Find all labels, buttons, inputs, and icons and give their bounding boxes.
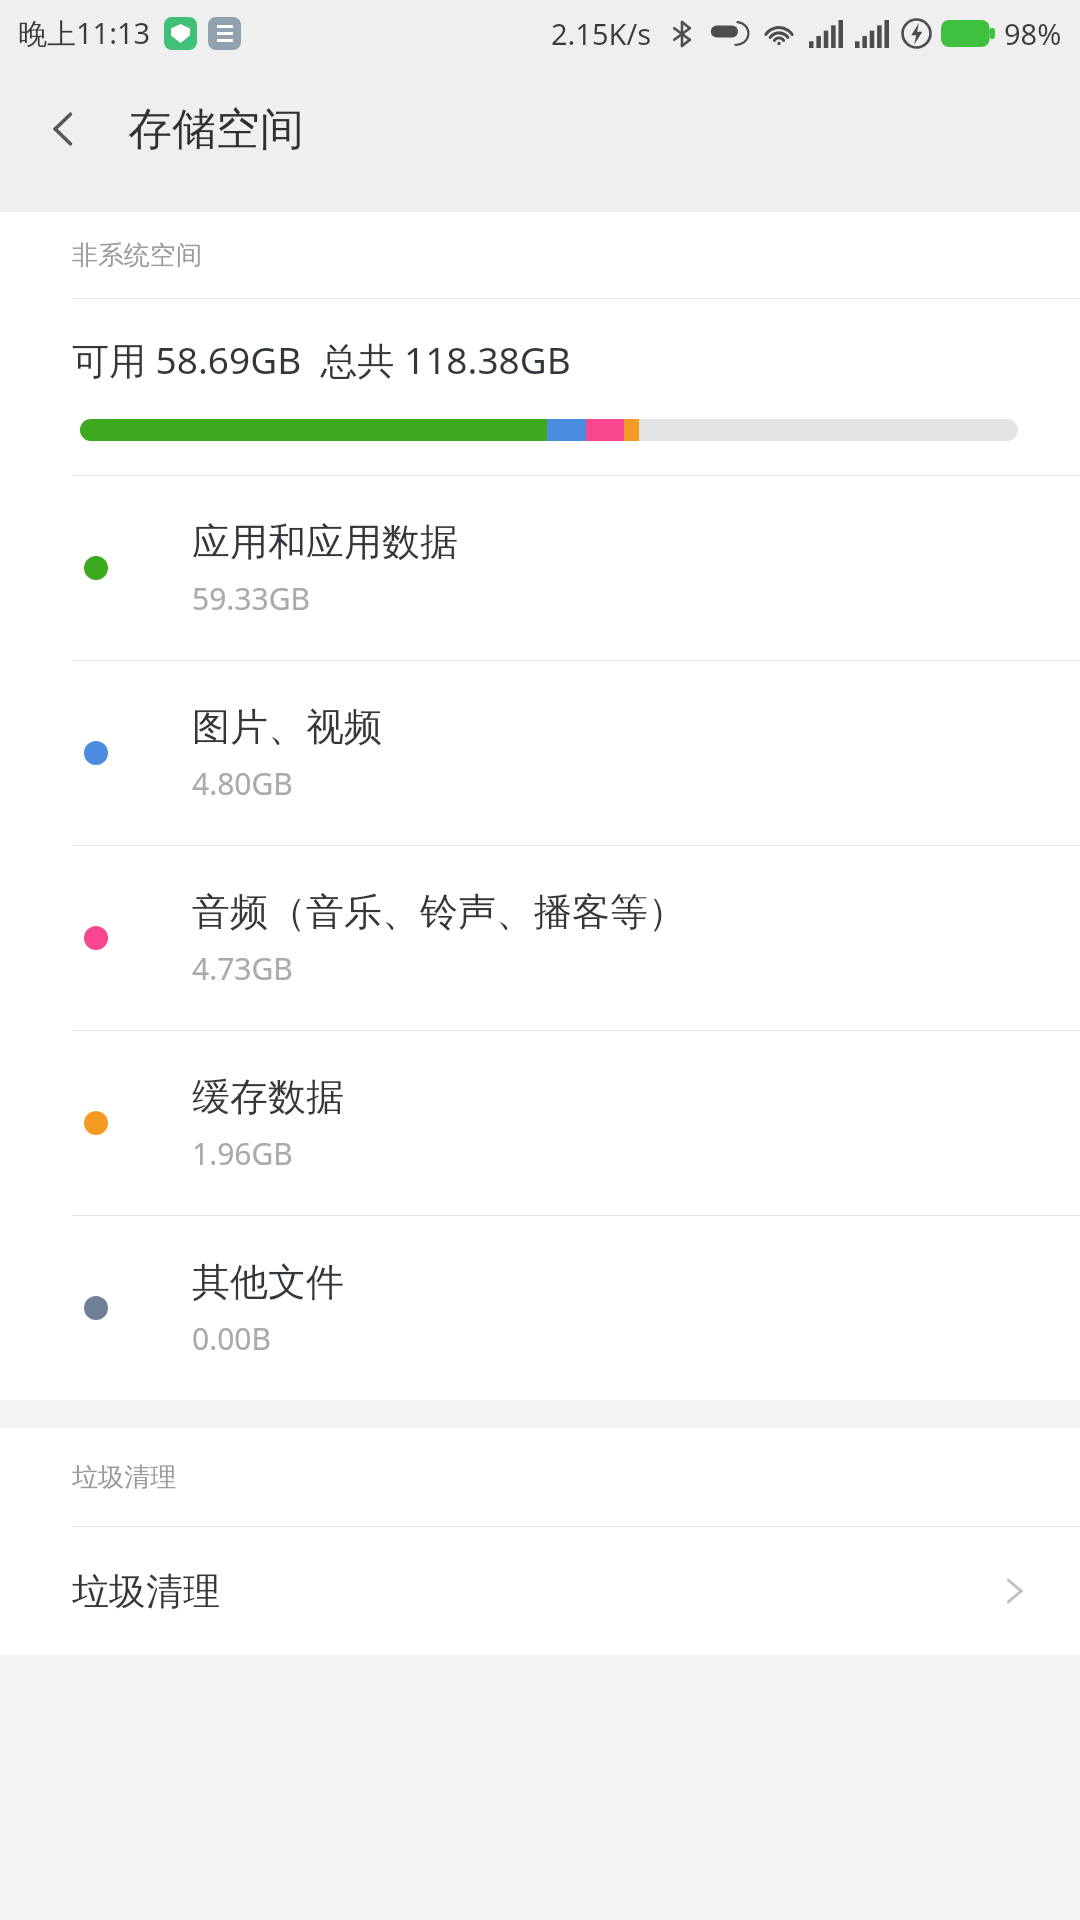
staticText: 非系统空间 (72, 239, 202, 272)
button[interactable]: 图片、视频 (0, 661, 1080, 845)
button[interactable]: 音频（音乐、铃声、播客等） (0, 846, 1080, 1030)
staticText: 缓存数据 (192, 1073, 344, 1121)
button[interactable]: 其他文件 (0, 1216, 1080, 1400)
staticText: 98% (1004, 14, 1062, 53)
button[interactable]: 应用和应用数据 (0, 476, 1080, 660)
staticText: 应用和应用数据 (192, 518, 458, 566)
staticText: 2.15K/s (551, 14, 652, 53)
button[interactable]: 缓存数据 (0, 1031, 1080, 1215)
button[interactable]: 返回 (26, 91, 102, 167)
staticText: 存储空间 (128, 102, 304, 157)
staticText: 晚上11:13 (18, 13, 151, 53)
staticText: 其他文件 (192, 1258, 344, 1306)
other: 垃圾清理 (996, 1573, 1032, 1609)
staticText: 可用 58.69GB 总共 118.38GB (72, 334, 571, 385)
staticText: 0.00B (192, 1318, 272, 1359)
staticText: 1.96GB (192, 1133, 293, 1174)
staticText: 4.80GB (192, 763, 293, 804)
staticText: 音频（音乐、铃声、播客等） (192, 888, 686, 936)
staticText: 图片、视频 (192, 703, 382, 751)
staticText: 4.73GB (192, 948, 293, 989)
staticText: 垃圾清理 (72, 1568, 220, 1615)
staticText: 垃圾清理 (72, 1461, 176, 1494)
button[interactable]: 垃圾清理 (0, 1527, 1080, 1655)
staticText: 59.33GB (192, 578, 311, 619)
